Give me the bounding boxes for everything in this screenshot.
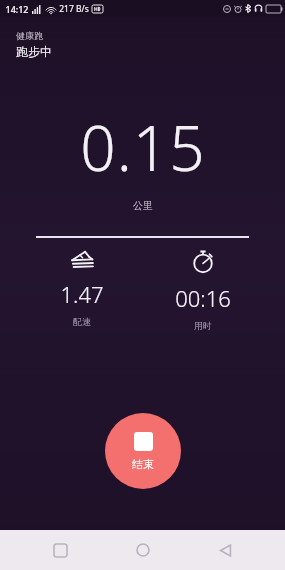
- staticText: 14:12: [5, 3, 29, 15]
- staticText: 公里: [133, 199, 153, 212]
- staticText: 0.15: [80, 105, 206, 189]
- button[interactable]: 结束: [105, 413, 181, 489]
- other: Duration: [192, 249, 214, 273]
- other: Pace: [69, 249, 95, 269]
- button[interactable]: Back: [203, 530, 247, 570]
- button[interactable]: Pace: [22, 249, 142, 327]
- staticText: 跑步中: [16, 44, 52, 59]
- staticText: 健康跑: [16, 30, 43, 41]
- staticText: 结束: [132, 457, 154, 471]
- staticText: 217 B/s: [59, 3, 89, 15]
- staticText: 配速: [73, 316, 91, 327]
- button[interactable]: Home: [121, 530, 165, 570]
- staticText: 1.47: [60, 279, 104, 309]
- staticText: 用时: [194, 320, 212, 331]
- button[interactable]: Recents: [38, 530, 82, 570]
- staticText: 00:16: [175, 283, 231, 313]
- button[interactable]: Duration: [142, 249, 263, 331]
